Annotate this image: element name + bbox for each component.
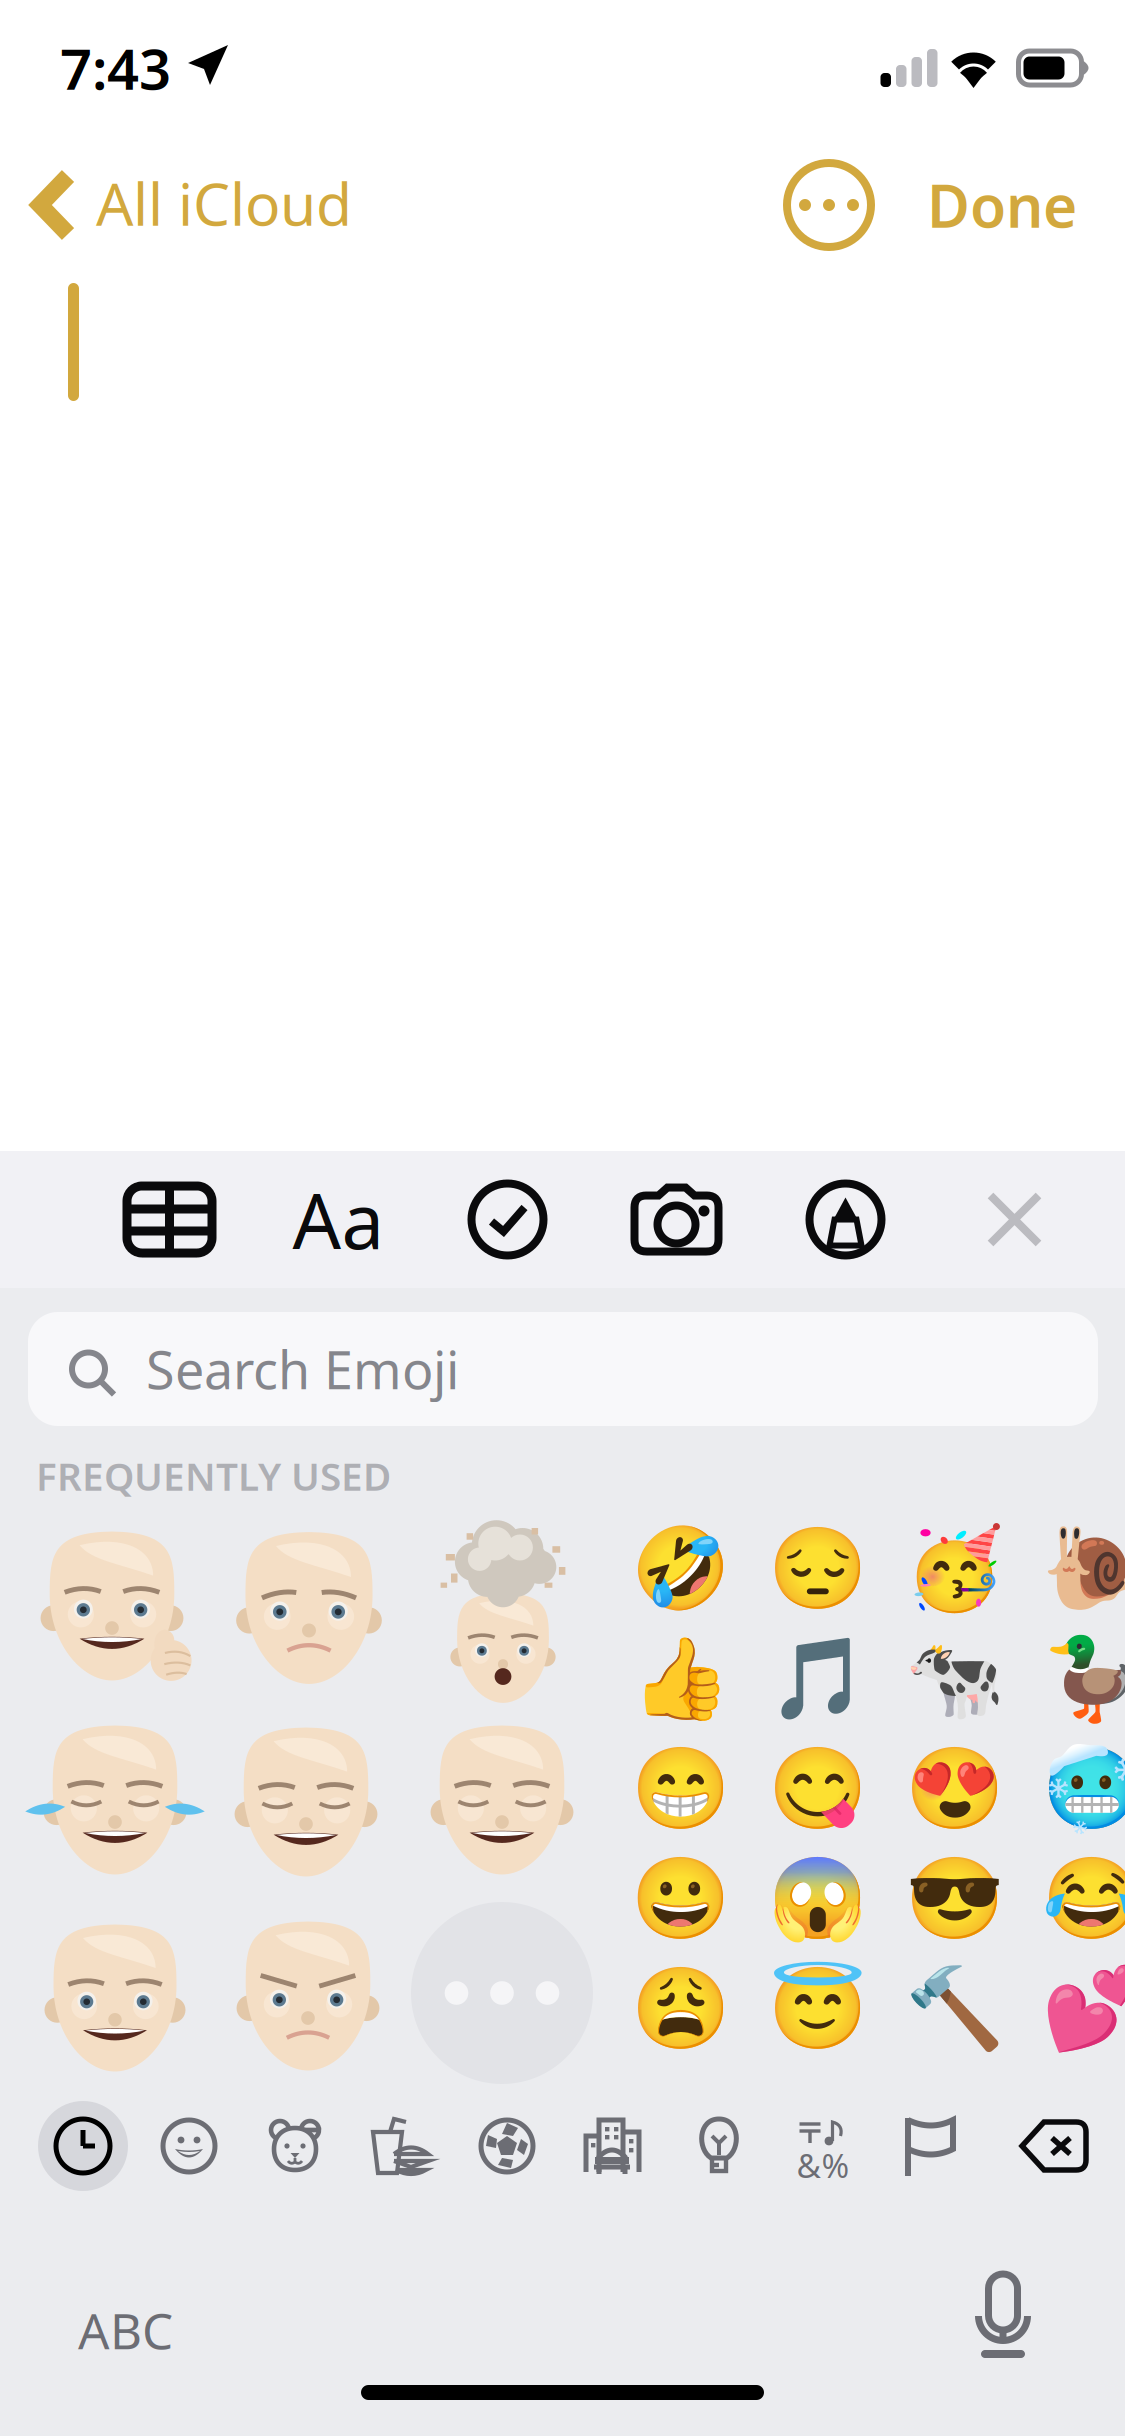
staticText: 😎 — [905, 1853, 1005, 1945]
button[interactable]: Flags — [878, 2094, 984, 2198]
staticText: 😩 — [631, 1963, 731, 2055]
button[interactable]: Frequently used — [30, 2094, 136, 2198]
staticText: Done — [927, 166, 1077, 244]
button[interactable]: Camera — [592, 1151, 761, 1288]
staticText: 😇 — [768, 1963, 868, 2055]
staticText: 😱 — [768, 1853, 868, 1945]
staticText: 🔨 — [905, 1963, 1005, 2055]
staticText: 😀 — [631, 1853, 731, 1945]
staticText: 🎵 — [768, 1633, 868, 1725]
button[interactable]: More — [765, 145, 893, 265]
button[interactable]: Smileys and people — [136, 2094, 242, 2198]
button[interactable]: Checklist — [423, 1151, 592, 1288]
staticText: 😂 — [1042, 1853, 1125, 1945]
button[interactable]: Symbols — [772, 2094, 878, 2198]
staticText: FREQUENTLY USED — [36, 1450, 391, 1501]
staticText: Aa — [292, 1169, 384, 1270]
staticText: ABC — [78, 2297, 173, 2363]
button[interactable]: Food and drink — [348, 2094, 454, 2198]
button[interactable]: Dictate — [937, 2268, 1083, 2392]
button[interactable]: Format — [254, 1151, 423, 1288]
button[interactable]: Markup — [761, 1151, 930, 1288]
button[interactable]: ABC — [38, 2269, 213, 2391]
button[interactable]: Activity — [454, 2094, 560, 2198]
staticText: All iCloud — [96, 164, 352, 242]
staticText: 🥶 — [1042, 1743, 1125, 1835]
staticText: 7:43 — [60, 31, 171, 105]
staticText: 🤣 — [631, 1523, 731, 1615]
staticText: 💕 — [1042, 1963, 1125, 2055]
button[interactable]: Search Emoji — [28, 1312, 1098, 1426]
staticText: 😔 — [768, 1523, 868, 1615]
button[interactable]: Table — [85, 1151, 254, 1288]
staticText: 😋 — [768, 1743, 868, 1835]
staticText: 🐌 — [1042, 1523, 1125, 1615]
staticText: 😁 — [631, 1743, 731, 1835]
button[interactable]: Animals and nature — [242, 2094, 348, 2198]
staticText: 🥳 — [905, 1523, 1005, 1615]
staticText: 🐄 — [905, 1633, 1005, 1725]
staticText: & — [796, 2143, 820, 2187]
button[interactable]: Hide keyboard — [930, 1151, 1099, 1288]
button[interactable]: Travel and places — [560, 2094, 666, 2198]
button[interactable]: All iCloud — [0, 152, 358, 258]
staticText: 😍 — [905, 1743, 1005, 1835]
button[interactable]: Done — [893, 146, 1125, 264]
button[interactable]: Delete — [988, 2094, 1120, 2198]
staticText: Search Emoji — [146, 1334, 459, 1404]
staticText: 🦆 — [1042, 1633, 1125, 1725]
staticText: % — [821, 2143, 849, 2187]
button[interactable]: Objects — [666, 2094, 772, 2198]
staticText: 👍 — [631, 1633, 731, 1725]
